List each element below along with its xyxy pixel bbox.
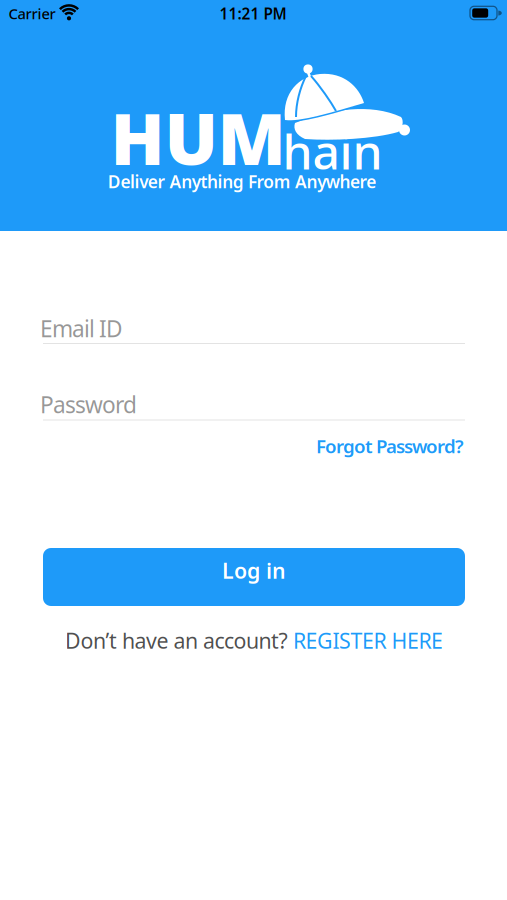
staticText: REGISTER HERE (293, 626, 443, 655)
button[interactable]: Don’t have an account? (65, 626, 443, 655)
button[interactable]: Email ID (43, 314, 465, 346)
staticText: Forgot Password? (316, 433, 464, 459)
button[interactable]: Password (43, 390, 465, 422)
staticText: Password (40, 389, 137, 420)
staticText: HUM (110, 91, 285, 184)
staticText: 11:21 PM (219, 3, 286, 24)
staticText: hain (282, 119, 382, 183)
staticText: Deliver Anything From Anywhere (108, 170, 376, 193)
button[interactable]: Forgot Password? (316, 433, 464, 459)
button[interactable]: Log in (43, 548, 465, 606)
staticText: Don’t have an account? (65, 626, 293, 655)
staticText: Carrier (8, 3, 55, 23)
staticText: Log in (222, 556, 286, 585)
staticText: Email ID (40, 313, 123, 344)
